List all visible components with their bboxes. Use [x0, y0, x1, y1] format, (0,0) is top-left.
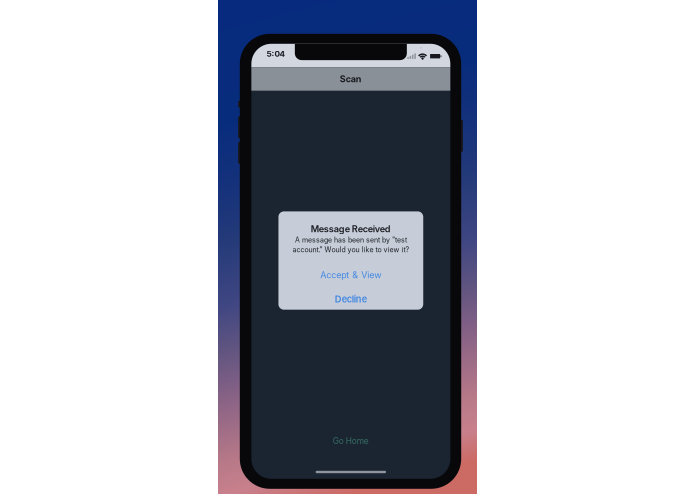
button[interactable]: Accept & View	[278, 269, 423, 282]
staticText: Accept & View	[320, 270, 381, 280]
button[interactable]: Go Home	[314, 435, 388, 448]
staticText: Go Home	[333, 436, 369, 446]
staticText: Decline	[335, 293, 367, 305]
button[interactable]: Decline	[278, 293, 423, 306]
staticText: 5:04	[266, 49, 285, 59]
staticText: A message has been sent by "test	[295, 236, 407, 244]
staticText: Message Received	[311, 223, 391, 234]
staticText: account." Would you like to view it?	[292, 245, 409, 254]
staticText: Scan	[340, 74, 362, 84]
